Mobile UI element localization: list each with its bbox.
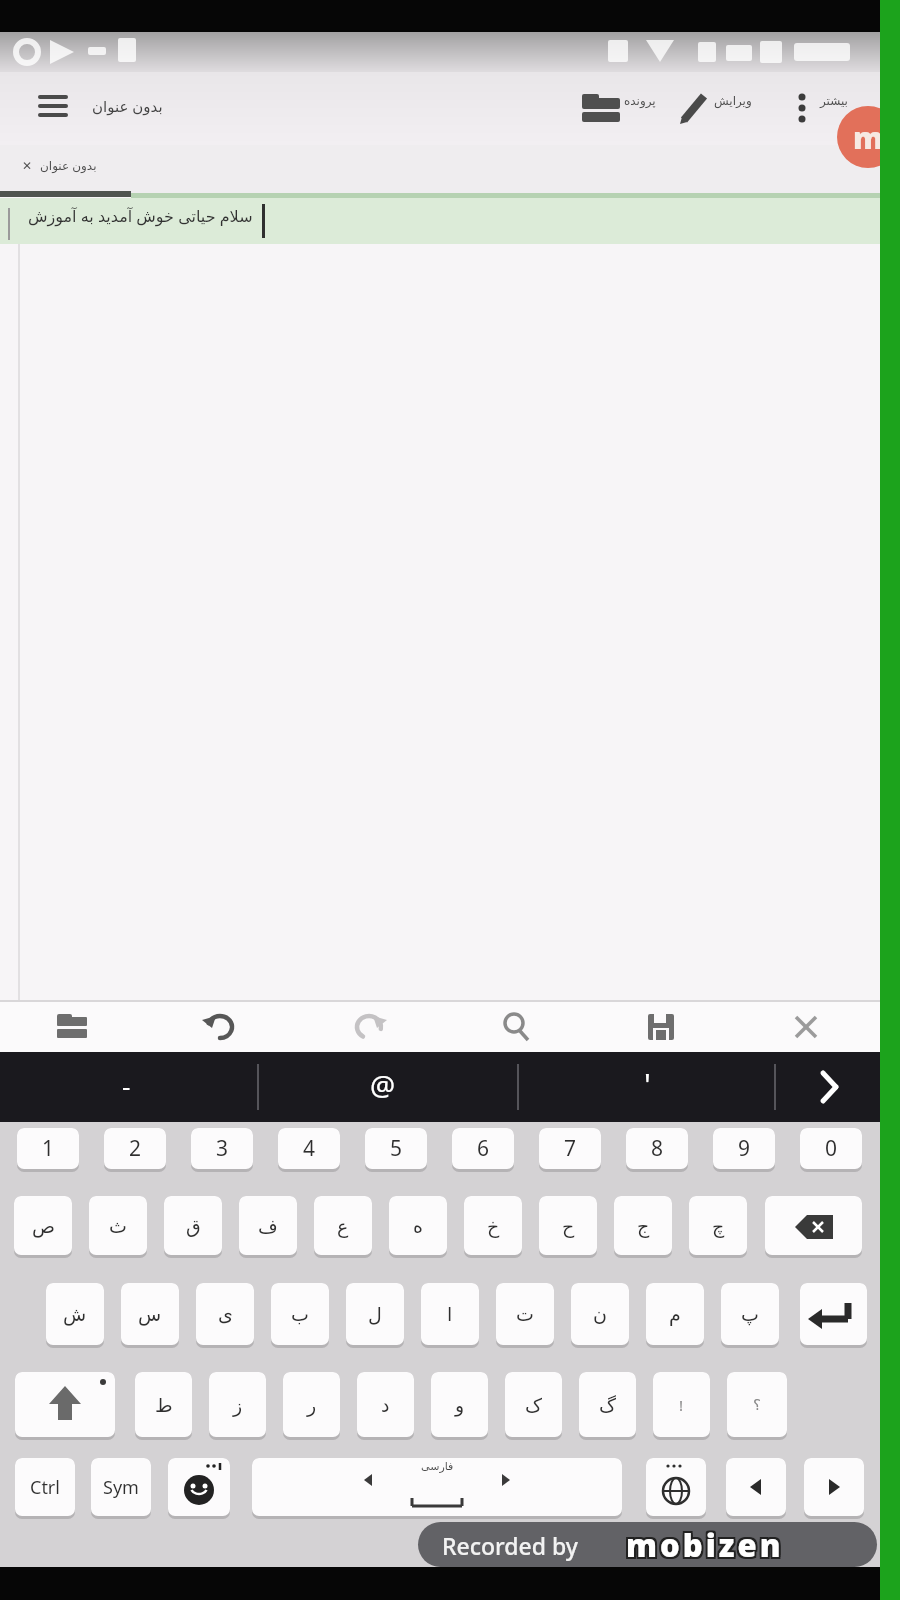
button[interactable] xyxy=(168,1458,230,1519)
button[interactable]: ک xyxy=(505,1372,562,1440)
button[interactable] xyxy=(639,1006,683,1048)
staticText: 0 xyxy=(825,1134,838,1163)
button[interactable]: ا xyxy=(421,1283,479,1348)
button[interactable]: ب xyxy=(271,1283,329,1348)
button[interactable]: ' xyxy=(518,1052,775,1122)
button[interactable]: 2 xyxy=(104,1128,166,1172)
button[interactable]: گ xyxy=(579,1372,636,1440)
button[interactable] xyxy=(50,1006,94,1048)
button[interactable]: 6 xyxy=(452,1128,514,1172)
button[interactable]: 7 xyxy=(539,1128,601,1172)
button[interactable]: ط xyxy=(135,1372,192,1440)
staticText: گ xyxy=(599,1394,617,1416)
button[interactable]: ز xyxy=(209,1372,266,1440)
button[interactable]: m xyxy=(837,106,899,168)
staticText: ✕ xyxy=(22,159,33,173)
button[interactable]: ی xyxy=(196,1283,254,1348)
staticText: ر xyxy=(307,1394,317,1416)
button[interactable]: @ xyxy=(258,1052,518,1122)
button[interactable]: ل xyxy=(346,1283,404,1348)
staticText: ز xyxy=(233,1394,243,1416)
button[interactable] xyxy=(15,1372,115,1440)
staticText: پ xyxy=(741,1303,759,1325)
button[interactable]: 9 xyxy=(713,1128,775,1172)
staticText: mobizen xyxy=(628,1522,786,1564)
button[interactable]: بیشتر xyxy=(790,86,870,130)
button[interactable]: ق xyxy=(164,1196,222,1258)
staticText: 6 xyxy=(477,1134,490,1163)
button[interactable] xyxy=(646,1458,706,1519)
staticText: ن xyxy=(593,1303,607,1325)
staticText: ه xyxy=(413,1215,423,1237)
staticText: ! xyxy=(679,1395,684,1415)
button[interactable] xyxy=(804,1458,864,1519)
staticText: 1 xyxy=(42,1134,55,1163)
button[interactable]: س xyxy=(121,1283,179,1348)
button[interactable]: ح xyxy=(539,1196,597,1258)
button[interactable]: پ xyxy=(721,1283,779,1348)
button[interactable] xyxy=(784,1006,828,1048)
button[interactable]: چ xyxy=(689,1196,747,1258)
button[interactable]: ویرایش xyxy=(676,86,766,130)
button[interactable]: پرونده xyxy=(578,86,663,130)
staticText: 9 xyxy=(738,1134,751,1163)
button[interactable]: ش xyxy=(46,1283,104,1348)
button[interactable]: Ctrl xyxy=(15,1458,75,1519)
button[interactable]: 5 xyxy=(365,1128,427,1172)
button[interactable]: م xyxy=(646,1283,704,1348)
button[interactable] xyxy=(198,1006,244,1048)
button[interactable]: 3 xyxy=(191,1128,253,1172)
button[interactable]: ؟ xyxy=(727,1372,787,1440)
staticText: mobizen xyxy=(628,1526,786,1568)
button[interactable]: 1 xyxy=(17,1128,79,1172)
button[interactable]: ث xyxy=(89,1196,147,1258)
button[interactable]: 4 xyxy=(278,1128,340,1172)
staticText: mobizen xyxy=(624,1524,782,1566)
button[interactable] xyxy=(345,1006,391,1048)
button[interactable] xyxy=(800,1283,867,1348)
staticText: بیشتر xyxy=(820,94,848,108)
button[interactable]: ه xyxy=(389,1196,447,1258)
button[interactable] xyxy=(726,1458,786,1519)
button[interactable]: ✕ xyxy=(0,145,132,197)
button[interactable]: 8 xyxy=(626,1128,688,1172)
button[interactable] xyxy=(494,1006,538,1048)
staticText: ک xyxy=(525,1394,543,1416)
button[interactable]: ! xyxy=(653,1372,710,1440)
button[interactable]: و xyxy=(431,1372,488,1440)
staticText: mobizen xyxy=(624,1526,782,1568)
button[interactable]: فارسی xyxy=(252,1458,622,1519)
staticText: Sym xyxy=(103,1475,139,1500)
button[interactable]: ف xyxy=(239,1196,297,1258)
staticText: mobizen xyxy=(626,1524,784,1566)
button[interactable]: ع xyxy=(314,1196,372,1258)
button[interactable]: 0 xyxy=(800,1128,862,1172)
button[interactable]: ت xyxy=(496,1283,554,1348)
staticText: Recorded by xyxy=(442,1530,578,1561)
staticText: 5 xyxy=(390,1134,403,1163)
staticText: 3 xyxy=(216,1134,229,1163)
staticText: چ xyxy=(712,1215,725,1237)
button[interactable]: Sym xyxy=(91,1458,151,1519)
staticText: ث xyxy=(109,1215,127,1237)
button[interactable]: د xyxy=(357,1372,414,1440)
staticText: ط xyxy=(155,1394,173,1416)
button[interactable]: - xyxy=(0,1052,258,1122)
button[interactable] xyxy=(30,85,76,131)
button[interactable]: ر xyxy=(283,1372,340,1440)
staticText: ل xyxy=(368,1303,382,1325)
button[interactable]: ج xyxy=(614,1196,672,1258)
button[interactable]: ص xyxy=(14,1196,72,1258)
button[interactable] xyxy=(775,1052,880,1122)
button[interactable] xyxy=(765,1196,862,1258)
staticText: 8 xyxy=(651,1134,664,1163)
staticText: - xyxy=(122,1068,131,1103)
staticText: m xyxy=(853,117,883,158)
staticText: ح xyxy=(562,1215,575,1237)
button[interactable]: خ xyxy=(464,1196,522,1258)
button[interactable]: ن xyxy=(571,1283,629,1348)
staticText: فارسی xyxy=(421,1460,454,1473)
staticText: د xyxy=(381,1394,390,1416)
staticText: ' xyxy=(644,1064,651,1105)
